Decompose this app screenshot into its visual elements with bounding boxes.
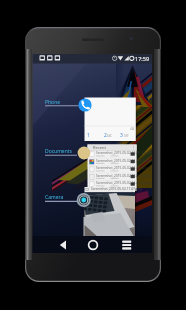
staticText: Documents: [45, 148, 72, 155]
button[interactable]: Recent apps: [119, 238, 133, 252]
staticText: 17:59: [135, 55, 150, 62]
button[interactable]: Phone shortcut: [44, 97, 94, 113]
staticText: Screenshot_2015-05-02-12-42-02.png: [96, 166, 152, 170]
staticText: Screenshot_2015-05-02-13-43-03.png: [96, 174, 152, 178]
staticText: 1: [87, 132, 90, 139]
staticText: ABC: [107, 134, 112, 138]
button[interactable]: Home: [87, 238, 101, 252]
staticText: Recent: [93, 145, 106, 150]
staticText: 2: [104, 132, 107, 139]
staticText: Screenshot_2015-05-02-11-41-01.png: [96, 159, 152, 163]
staticText: 3: [120, 132, 123, 139]
staticText: Screenshot_2015-05-02-10-40-00.png: [96, 151, 152, 155]
button[interactable]: Back: [57, 238, 71, 252]
staticText: DEF: [124, 134, 129, 138]
staticText: ⌫: [130, 127, 135, 130]
staticText: Screenshot_2015-05-02-17-07.png: [91, 187, 142, 191]
staticText: Phone: [45, 99, 61, 106]
staticText: Screenshot_2015-05-02-14-44-04.png: [96, 181, 152, 185]
staticText: Camera: [45, 194, 64, 201]
button[interactable]: Documents shortcut: [44, 146, 94, 162]
button[interactable]: Camera shortcut: [44, 192, 94, 208]
